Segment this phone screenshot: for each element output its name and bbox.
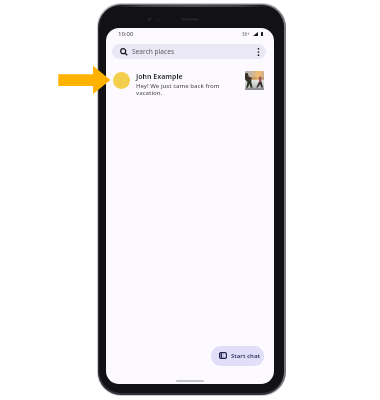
staticText: Hey! We just came back from vacation.: [136, 82, 242, 97]
button[interactable]: Start chat: [211, 346, 264, 366]
staticText: Start chat: [231, 352, 261, 360]
other: More options: [257, 48, 260, 56]
staticText: Search places: [132, 47, 175, 56]
staticText: John Example: [136, 72, 183, 81]
staticText: 36+: [242, 31, 250, 37]
button[interactable]: J: [106, 68, 274, 100]
button[interactable]: Search: [112, 44, 266, 59]
other: Search: [120, 48, 128, 56]
staticText: 10:00: [118, 30, 134, 38]
